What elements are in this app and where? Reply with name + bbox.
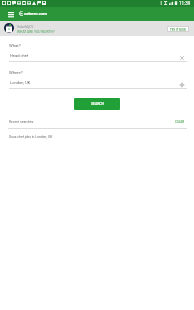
button[interactable]: Open navigation menu bbox=[5, 10, 16, 18]
button[interactable]: Sous chef jobs in London, UK bbox=[0, 133, 194, 144]
staticText: 11:39 bbox=[179, 1, 191, 6]
staticText: caterer.com bbox=[24, 11, 48, 16]
staticText: TRY IT NOW bbox=[170, 28, 186, 31]
button[interactable]: Clear bbox=[179, 55, 185, 61]
button[interactable]: CLEAR bbox=[175, 120, 185, 124]
staticText: Where? bbox=[9, 70, 23, 75]
staticText: Head chef bbox=[10, 53, 29, 58]
staticText: Recent searches: bbox=[9, 120, 35, 124]
button[interactable]: ValueMyCV bbox=[0, 21, 194, 36]
button[interactable]: Use my location bbox=[179, 82, 185, 88]
button[interactable]: SEARCH bbox=[74, 98, 120, 110]
button[interactable]: caterer.com home bbox=[19, 10, 43, 18]
staticText: ValueMyCV bbox=[17, 25, 34, 29]
staticText: Sous chef jobs in London, UK bbox=[9, 135, 53, 139]
staticText: CLEAR bbox=[175, 120, 185, 124]
staticText: What? bbox=[9, 43, 21, 48]
staticText: WHAT ARE YOU WORTH? bbox=[17, 30, 55, 34]
staticText: SEARCH bbox=[91, 102, 104, 106]
staticText: London, UK bbox=[10, 80, 31, 85]
button[interactable]: TRY IT NOW bbox=[167, 26, 189, 32]
